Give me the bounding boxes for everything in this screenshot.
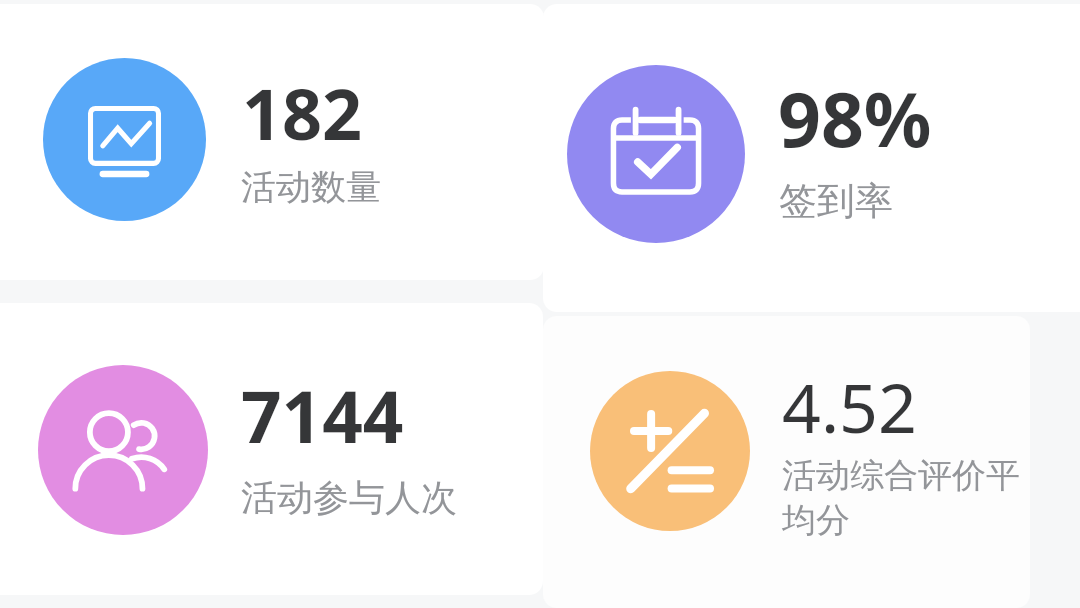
staticText: 签到率	[779, 177, 1080, 225]
button[interactable]: 活动参与人次	[0, 303, 543, 595]
button[interactable]: 签到率日历	[543, 4, 1080, 312]
other: 活动综合评价平均分	[590, 371, 750, 531]
staticText: 7144	[241, 367, 404, 464]
staticText: 4.52	[782, 360, 917, 453]
other: 活动数量统计	[43, 58, 206, 221]
staticText: 活动综合评价平均分	[782, 454, 1030, 542]
staticText: 98%	[778, 67, 932, 169]
other: 签到率日历	[567, 65, 745, 243]
staticText: 活动参与人次	[241, 475, 543, 520]
staticText: 182	[242, 65, 363, 160]
button[interactable]: 活动数量统计	[0, 4, 544, 280]
button[interactable]: 活动综合评价平均分	[543, 316, 1030, 608]
staticText: 活动数量	[241, 165, 544, 209]
other: 活动参与人次	[38, 365, 208, 535]
